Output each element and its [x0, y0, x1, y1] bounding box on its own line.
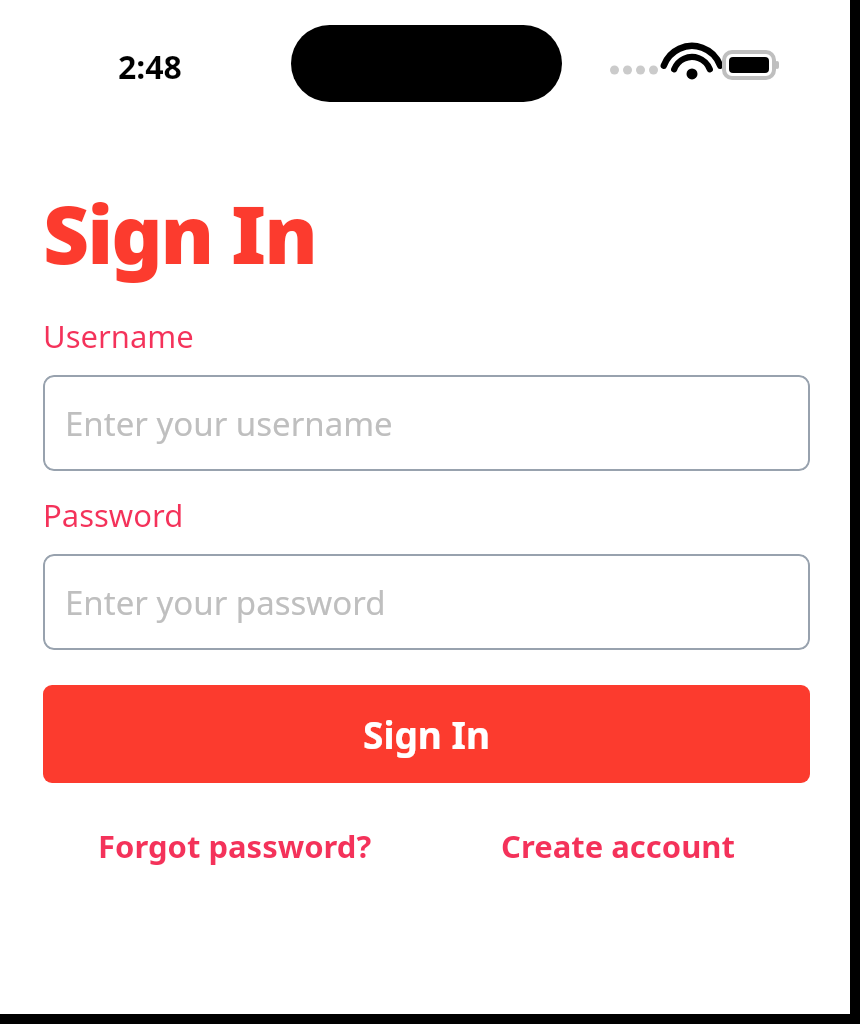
staticText: Enter your password	[65, 580, 386, 625]
button[interactable]: Sign In	[43, 685, 810, 783]
button[interactable]: Enter your username	[43, 375, 810, 471]
staticText: 2:48	[118, 45, 182, 85]
staticText: Forgot password?	[98, 825, 372, 867]
button[interactable]: Create account	[426, 825, 810, 867]
staticText: Password	[43, 494, 184, 536]
staticText: Sign In	[43, 178, 316, 287]
staticText: Create account	[501, 825, 735, 867]
staticText: Sign In	[363, 709, 490, 759]
button[interactable]: Forgot password?	[43, 825, 426, 867]
button[interactable]: Enter your password	[43, 554, 810, 650]
staticText: Username	[43, 315, 194, 357]
staticText: Enter your username	[65, 401, 393, 446]
